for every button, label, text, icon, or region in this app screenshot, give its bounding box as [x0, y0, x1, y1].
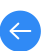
button[interactable]: Back [0, 0, 41, 51]
